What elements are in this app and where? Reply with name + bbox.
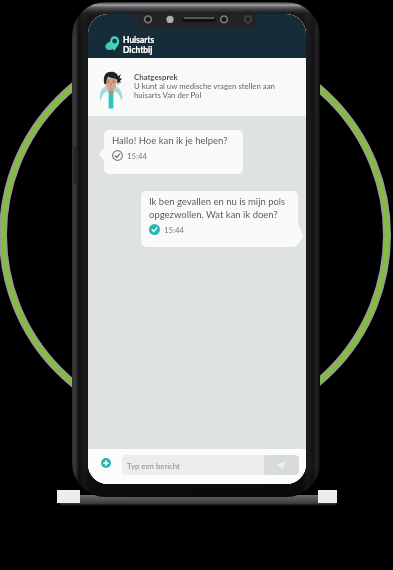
staticText: Typ een bericht bbox=[127, 461, 180, 470]
staticText: Huisarts bbox=[123, 35, 155, 45]
staticText: 15:44 bbox=[127, 151, 148, 160]
staticText: 15:44 bbox=[164, 225, 185, 234]
staticText: Ik ben gevallen en nu is mijn pols opgez… bbox=[149, 196, 292, 220]
button[interactable]: Add attachment bbox=[101, 458, 111, 468]
button[interactable]: Ik ben gevallen en nu is mijn pols opgez… bbox=[141, 191, 298, 247]
staticText: U kunt al uw medische vragen stellen aan… bbox=[134, 81, 276, 100]
button[interactable]: Chatgesprek bbox=[88, 58, 306, 116]
button[interactable]: Typ een bericht bbox=[122, 455, 299, 475]
button[interactable]: Huisarts bbox=[123, 35, 155, 55]
staticText: Chatgesprek bbox=[134, 72, 178, 81]
staticText: Dichtbij bbox=[123, 45, 153, 55]
button[interactable]: Hallo! Hoe kan ik je helpen? bbox=[104, 130, 243, 174]
staticText: Hallo! Hoe kan ik je helpen? bbox=[112, 135, 228, 146]
button[interactable]: Send message bbox=[264, 455, 299, 475]
